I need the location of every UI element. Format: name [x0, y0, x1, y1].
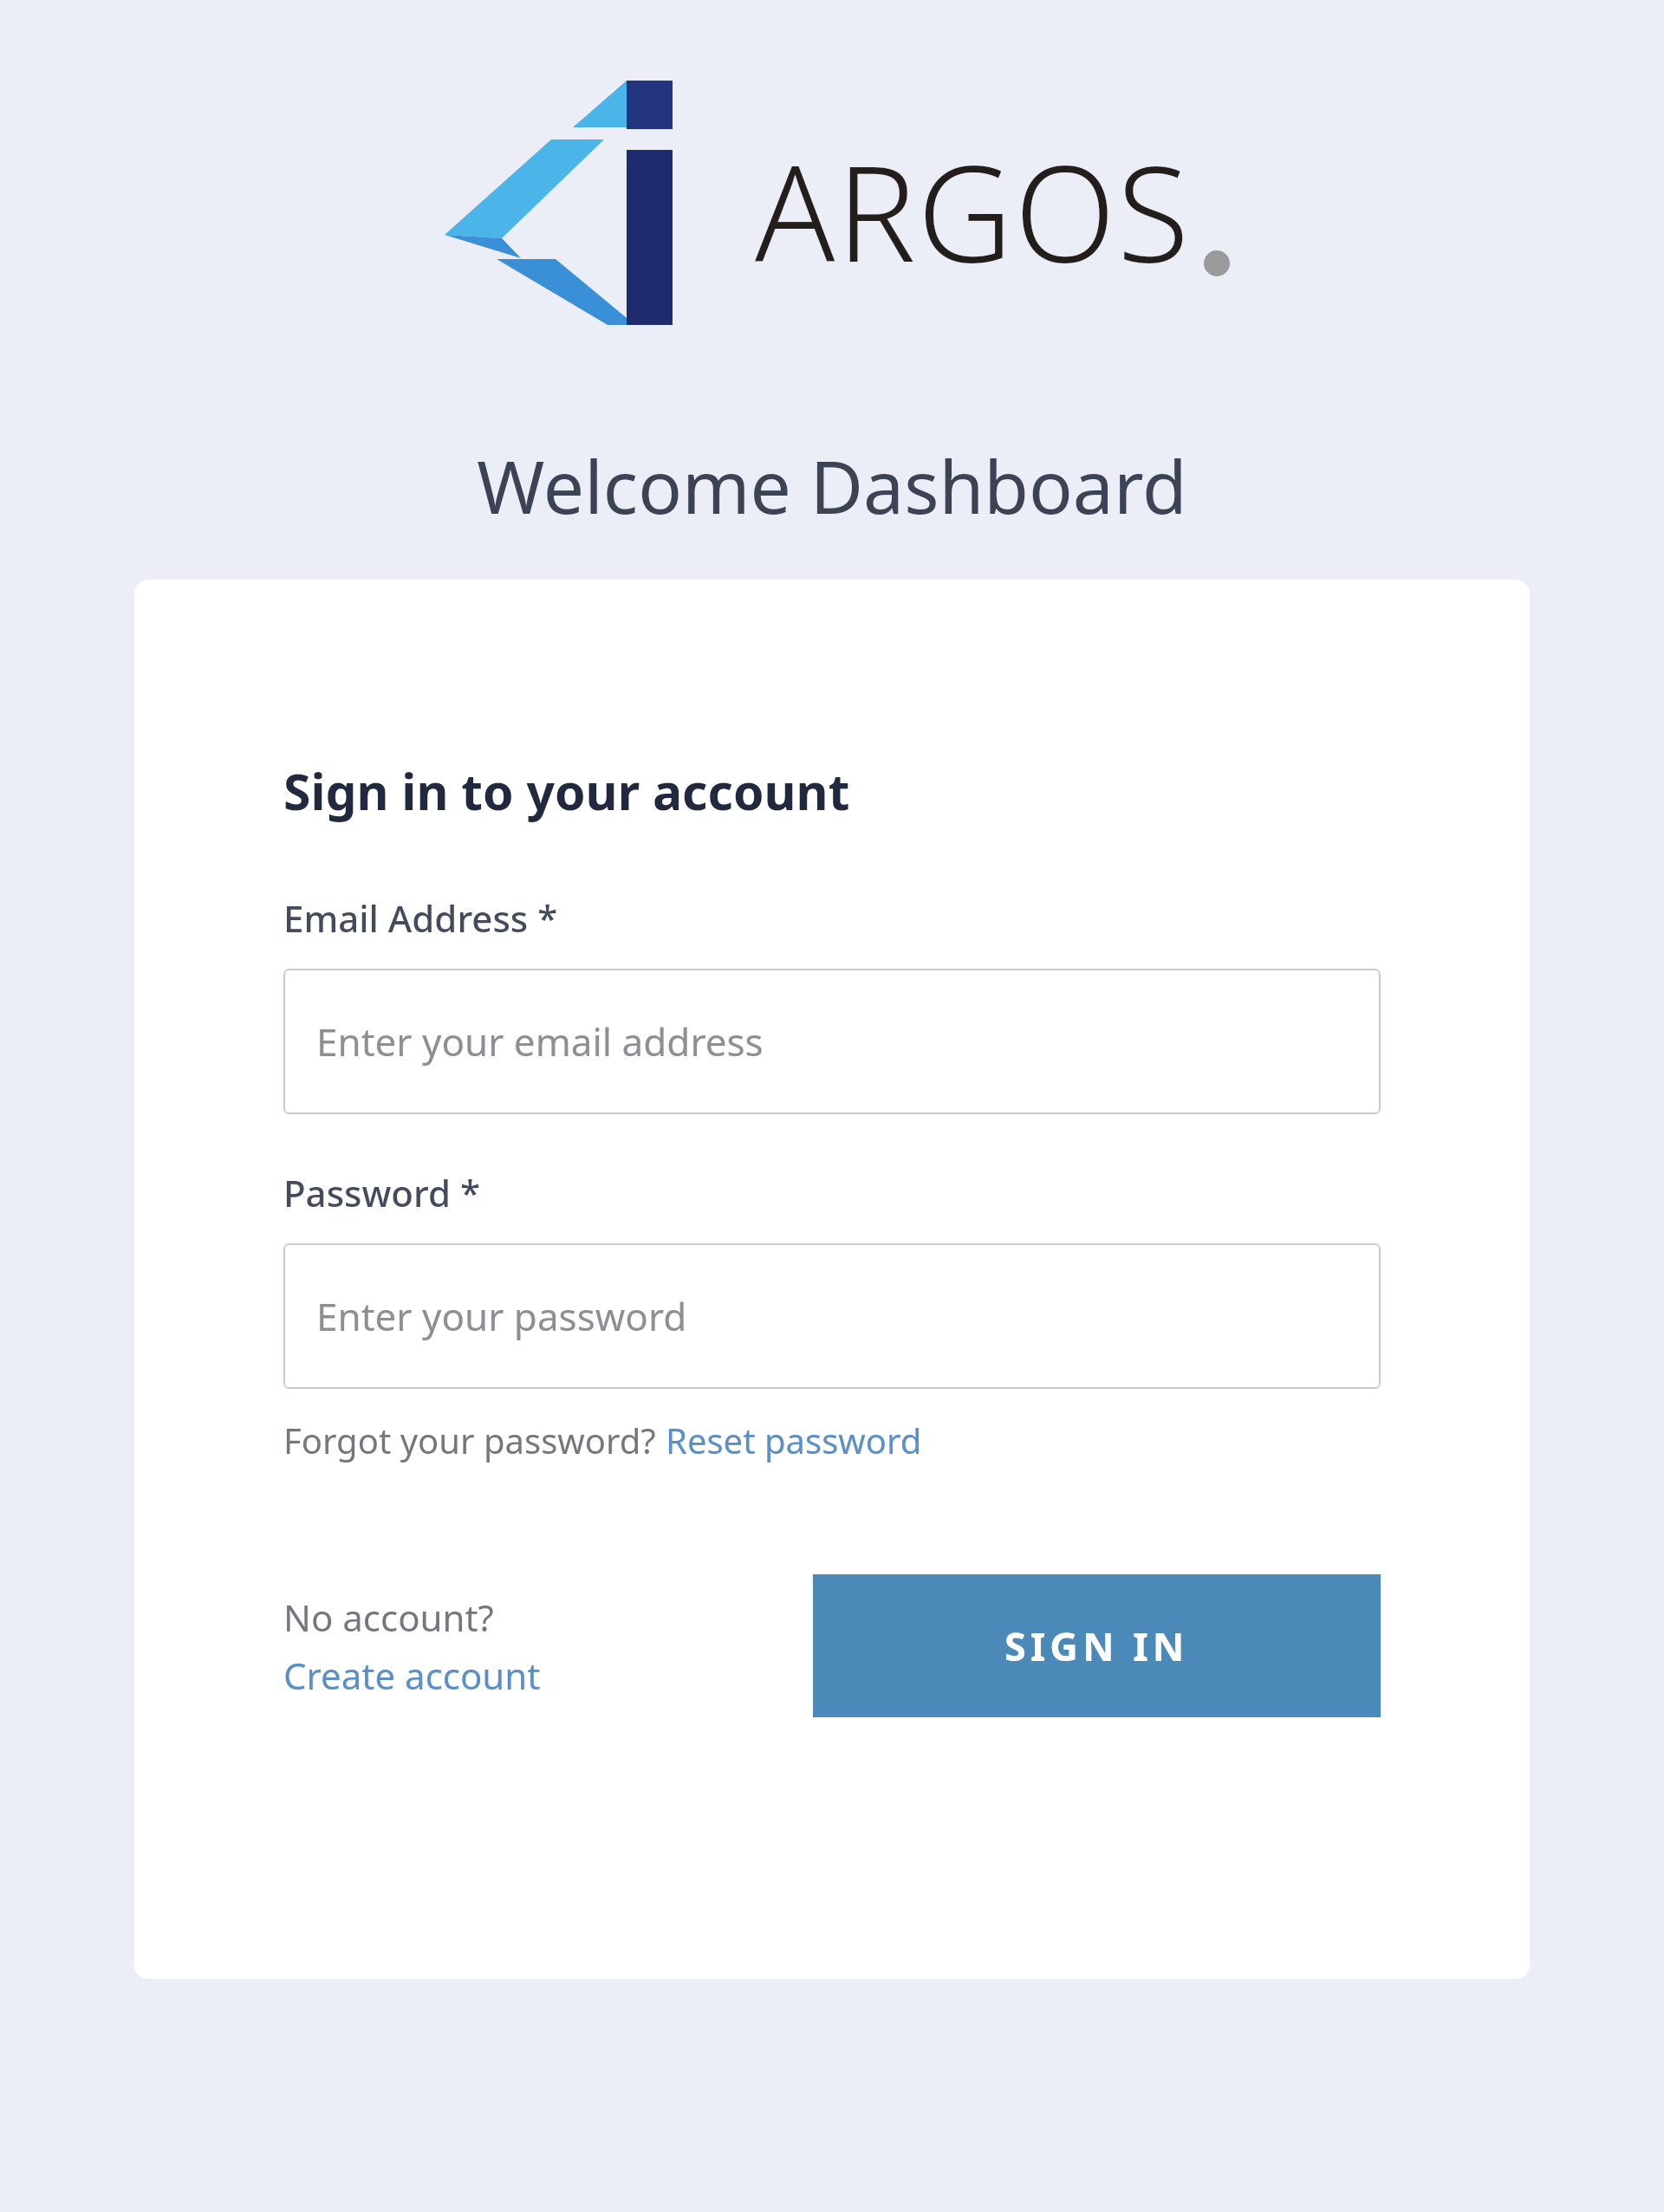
staticText: Forgot your password?	[283, 1417, 666, 1463]
staticText: No account?	[283, 1593, 494, 1642]
staticText: Enter your email address	[316, 1015, 764, 1067]
staticText: Create account	[283, 1651, 541, 1700]
button[interactable]: Create account	[283, 1651, 541, 1700]
staticText: SIGN IN	[1004, 1619, 1189, 1672]
staticText: Enter your password	[316, 1290, 687, 1342]
button[interactable]: Enter your email address	[283, 969, 1381, 1114]
button[interactable]: Reset password	[666, 1417, 922, 1463]
staticText: Sign in to your account	[283, 757, 850, 825]
button[interactable]: Enter your password	[283, 1243, 1381, 1389]
staticText: Welcome Dashboard	[0, 436, 1664, 535]
staticText: Email Address *	[283, 893, 558, 943]
staticText: Reset password	[666, 1417, 922, 1463]
staticText: ARGOS	[755, 121, 1192, 301]
staticText: Password *	[283, 1168, 480, 1217]
button[interactable]: SIGN IN	[813, 1574, 1381, 1717]
